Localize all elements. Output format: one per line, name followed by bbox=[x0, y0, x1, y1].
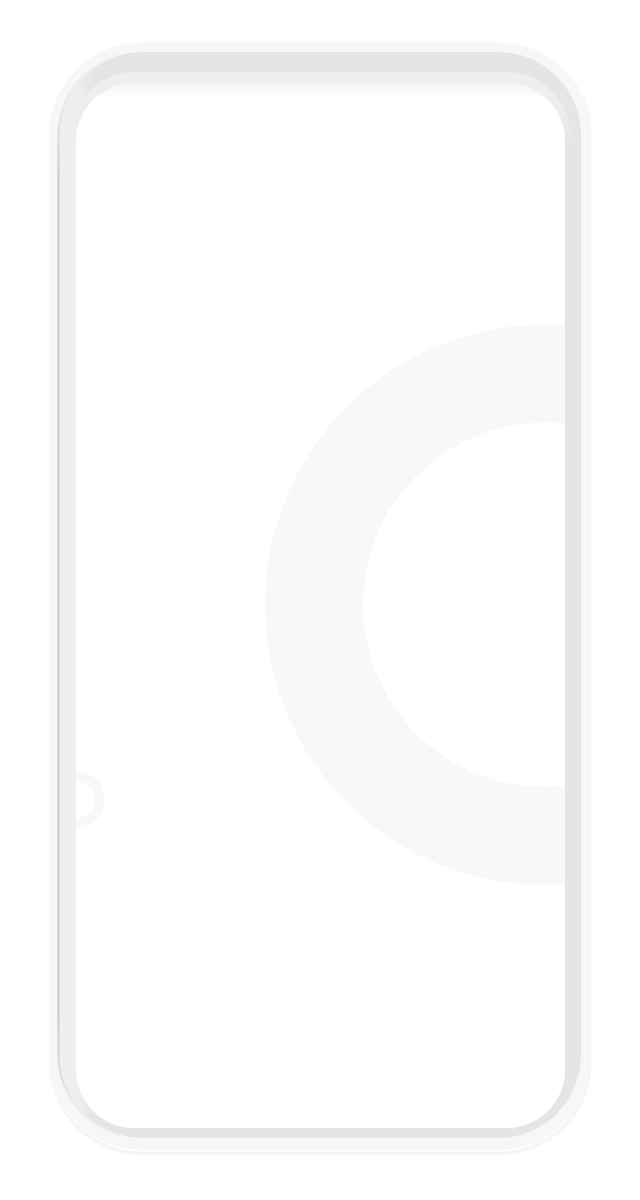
button[interactable]: App screen bbox=[76, 83, 565, 1128]
